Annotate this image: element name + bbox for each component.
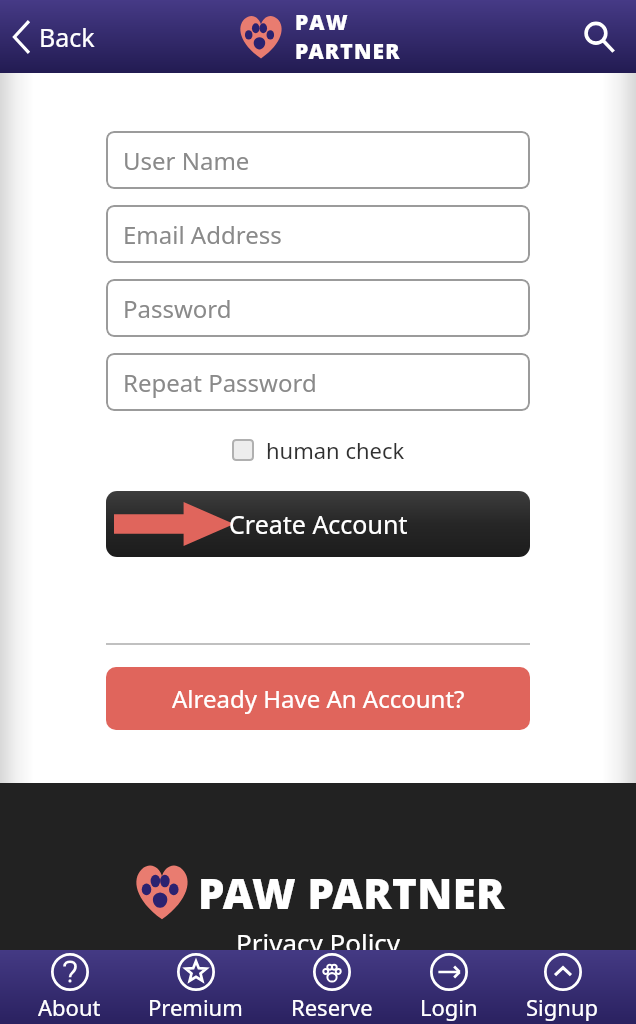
button[interactable]: human check xyxy=(232,435,405,465)
staticText: Already Have An Account? xyxy=(172,682,465,715)
button[interactable]: Repeat Password xyxy=(106,353,530,411)
button[interactable]: Signup xyxy=(516,951,609,1024)
staticText: User Name xyxy=(123,144,250,177)
staticText: Signup xyxy=(526,992,599,1022)
staticText: Password xyxy=(123,292,232,325)
staticText: Create Account xyxy=(229,507,408,541)
staticText: Login xyxy=(420,992,478,1022)
staticText: Premium xyxy=(148,992,243,1022)
staticText: PARTNER xyxy=(295,37,401,66)
button[interactable]: Create Account xyxy=(106,491,530,557)
button[interactable]: About xyxy=(28,951,111,1024)
staticText: Reserve xyxy=(291,992,373,1022)
button[interactable]: Search xyxy=(572,10,626,64)
staticText: About xyxy=(38,992,101,1022)
button[interactable]: Reserve xyxy=(281,951,383,1024)
staticText: PAW xyxy=(295,8,350,37)
button[interactable]: Privacy Policy xyxy=(236,925,401,950)
staticText: PAW PARTNER xyxy=(198,864,505,921)
button[interactable]: Premium xyxy=(138,951,253,1024)
button[interactable]: Password xyxy=(106,279,530,337)
staticText: Back xyxy=(39,20,95,54)
button[interactable]: Already Have An Account? xyxy=(106,667,530,730)
button[interactable]: Back xyxy=(4,11,103,63)
staticText: Email Address xyxy=(123,218,282,251)
button[interactable]: User Name xyxy=(106,131,530,189)
staticText: Repeat Password xyxy=(123,366,317,399)
button[interactable]: Email Address xyxy=(106,205,530,263)
staticText: Privacy Policy xyxy=(236,925,401,950)
staticText: human check xyxy=(266,435,405,465)
button[interactable]: Login xyxy=(410,951,488,1024)
